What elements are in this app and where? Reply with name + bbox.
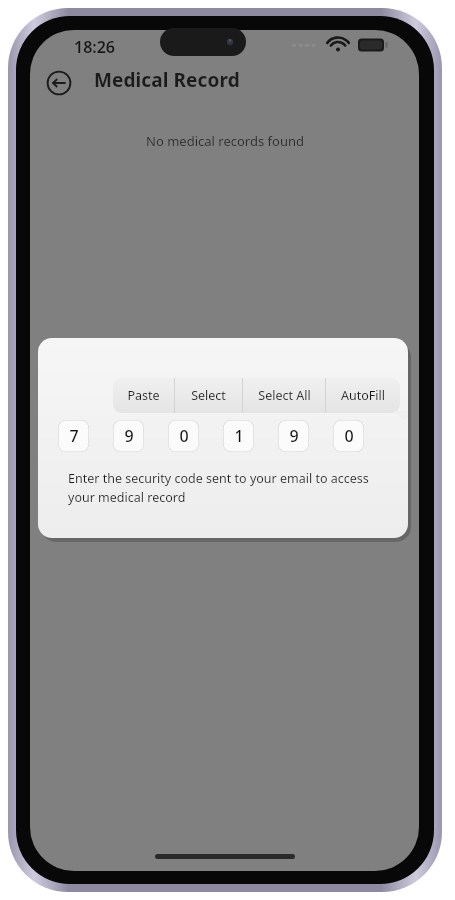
- staticText: 9: [289, 425, 299, 447]
- staticText: AutoFill: [341, 387, 385, 404]
- staticText: Medical Record: [94, 67, 240, 93]
- staticText: 7: [69, 425, 79, 447]
- button[interactable]: Back: [40, 64, 78, 102]
- staticText: 1: [234, 425, 244, 447]
- button[interactable]: Select: [175, 378, 242, 413]
- button[interactable]: 9: [278, 420, 309, 452]
- staticText: 0: [179, 425, 189, 447]
- button[interactable]: 9: [113, 420, 144, 452]
- button[interactable]: Select All: [243, 378, 325, 413]
- button[interactable]: 0: [168, 420, 199, 452]
- button[interactable]: AutoFill: [326, 378, 400, 413]
- staticText: No medical records found: [146, 132, 304, 150]
- staticText: 9: [124, 425, 134, 447]
- staticText: Select: [191, 387, 226, 404]
- staticText: 0: [344, 425, 354, 447]
- button[interactable]: Paste: [113, 378, 174, 413]
- staticText: Select All: [258, 387, 311, 404]
- staticText: Enter the security code sent to your ema…: [68, 470, 378, 506]
- staticText: 18:26: [74, 36, 116, 58]
- button[interactable]: 0: [333, 420, 364, 452]
- button[interactable]: 7: [58, 420, 89, 452]
- staticText: Paste: [127, 387, 160, 404]
- button[interactable]: 1: [223, 420, 254, 452]
